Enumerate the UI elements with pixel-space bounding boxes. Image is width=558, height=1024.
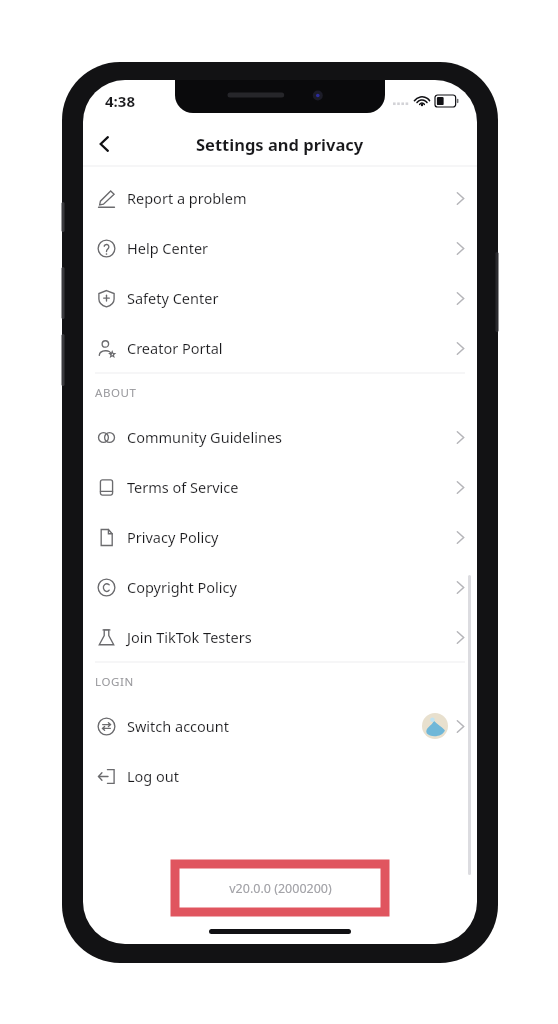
button[interactable]: Safety Center (83, 273, 477, 323)
staticText: Switch account (127, 716, 230, 736)
staticText: Join TikTok Testers (127, 627, 252, 647)
button[interactable]: Terms of Service (83, 462, 477, 512)
staticText: Log out (127, 766, 180, 786)
button[interactable]: Help Center (83, 223, 477, 273)
staticText: 4:38 (105, 91, 135, 111)
button[interactable]: Join TikTok Testers (83, 612, 477, 662)
staticText: ABOUT (95, 385, 137, 401)
button[interactable]: Log out (83, 751, 477, 801)
button[interactable]: Report a problem (83, 173, 477, 223)
button[interactable]: Copyright Policy (83, 562, 477, 612)
staticText: v20.0.0 (2000200) (229, 880, 332, 897)
button[interactable]: Switch account (83, 701, 477, 751)
staticText: Community Guidelines (127, 427, 283, 447)
button[interactable]: Privacy Policy (83, 512, 477, 562)
staticText: Help Center (127, 238, 209, 258)
staticText: Safety Center (127, 288, 219, 308)
staticText: Settings and privacy (196, 133, 364, 155)
staticText: Terms of Service (127, 477, 239, 497)
button[interactable]: Back (83, 122, 127, 166)
staticText: Privacy Policy (127, 527, 219, 547)
button[interactable]: Community Guidelines (83, 412, 477, 462)
staticText: Report a problem (127, 188, 247, 208)
staticText: Creator Portal (127, 338, 223, 358)
button[interactable]: Creator Portal (83, 323, 477, 373)
staticText: LOGIN (95, 674, 134, 690)
staticText: Copyright Policy (127, 577, 237, 597)
